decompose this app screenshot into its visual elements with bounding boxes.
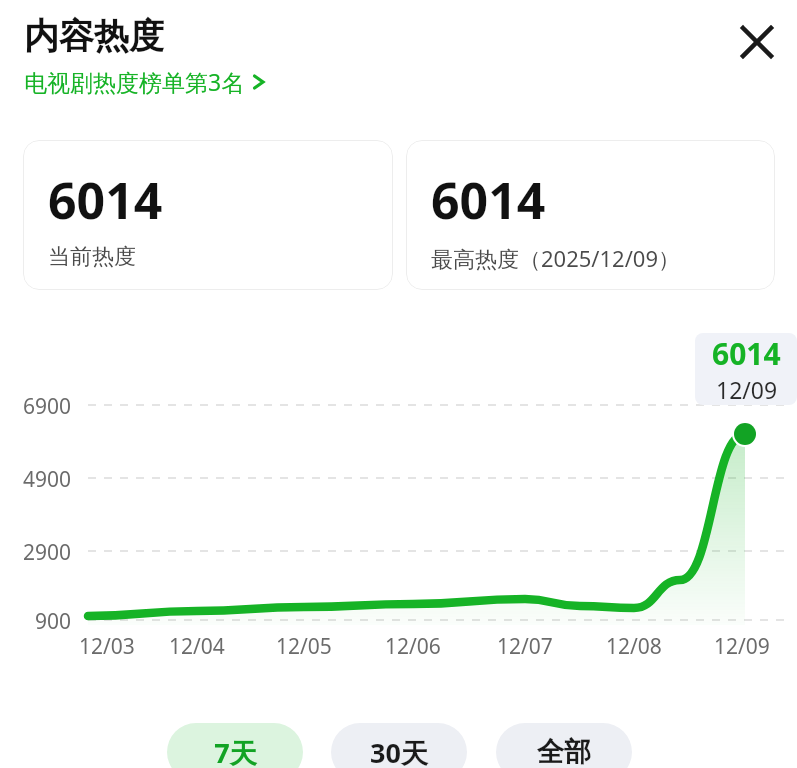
button[interactable]: 30天 (331, 723, 467, 768)
staticText: 12/03 (79, 632, 135, 661)
staticText: 全部 (537, 735, 591, 768)
staticText: 内容热度 (24, 14, 164, 58)
staticText: 7天 (214, 734, 257, 768)
button[interactable]: 7天 (167, 723, 303, 768)
staticText: 12/09 (716, 374, 778, 405)
button[interactable]: 电视剧热度榜单第3名 (24, 64, 273, 99)
staticText: 最高热度（2025/12/09） (431, 243, 681, 273)
staticText: 12/07 (497, 632, 553, 661)
staticText: 6014 (431, 166, 546, 234)
staticText: 6900 (23, 392, 72, 421)
button[interactable]: 全部 (496, 723, 632, 768)
staticText: 12/08 (606, 632, 662, 661)
staticText: 12/09 (714, 632, 770, 661)
button[interactable]: 6014 (406, 140, 775, 290)
staticText: 4900 (23, 465, 72, 494)
button[interactable]: 6014 (23, 140, 393, 290)
button[interactable]: 6014 (695, 333, 797, 405)
staticText: 6014 (48, 166, 163, 234)
staticText: 900 (35, 607, 72, 636)
staticText: 当前热度 (48, 243, 136, 271)
staticText: 12/04 (169, 632, 225, 661)
staticText: 6014 (712, 333, 781, 374)
staticText: 12/06 (385, 632, 441, 661)
staticText: 2900 (23, 538, 72, 567)
staticText: 12/05 (276, 632, 332, 661)
staticText: 30天 (370, 734, 428, 768)
button[interactable]: Close (729, 14, 785, 70)
staticText: 电视剧热度榜单第3名 (24, 66, 245, 97)
